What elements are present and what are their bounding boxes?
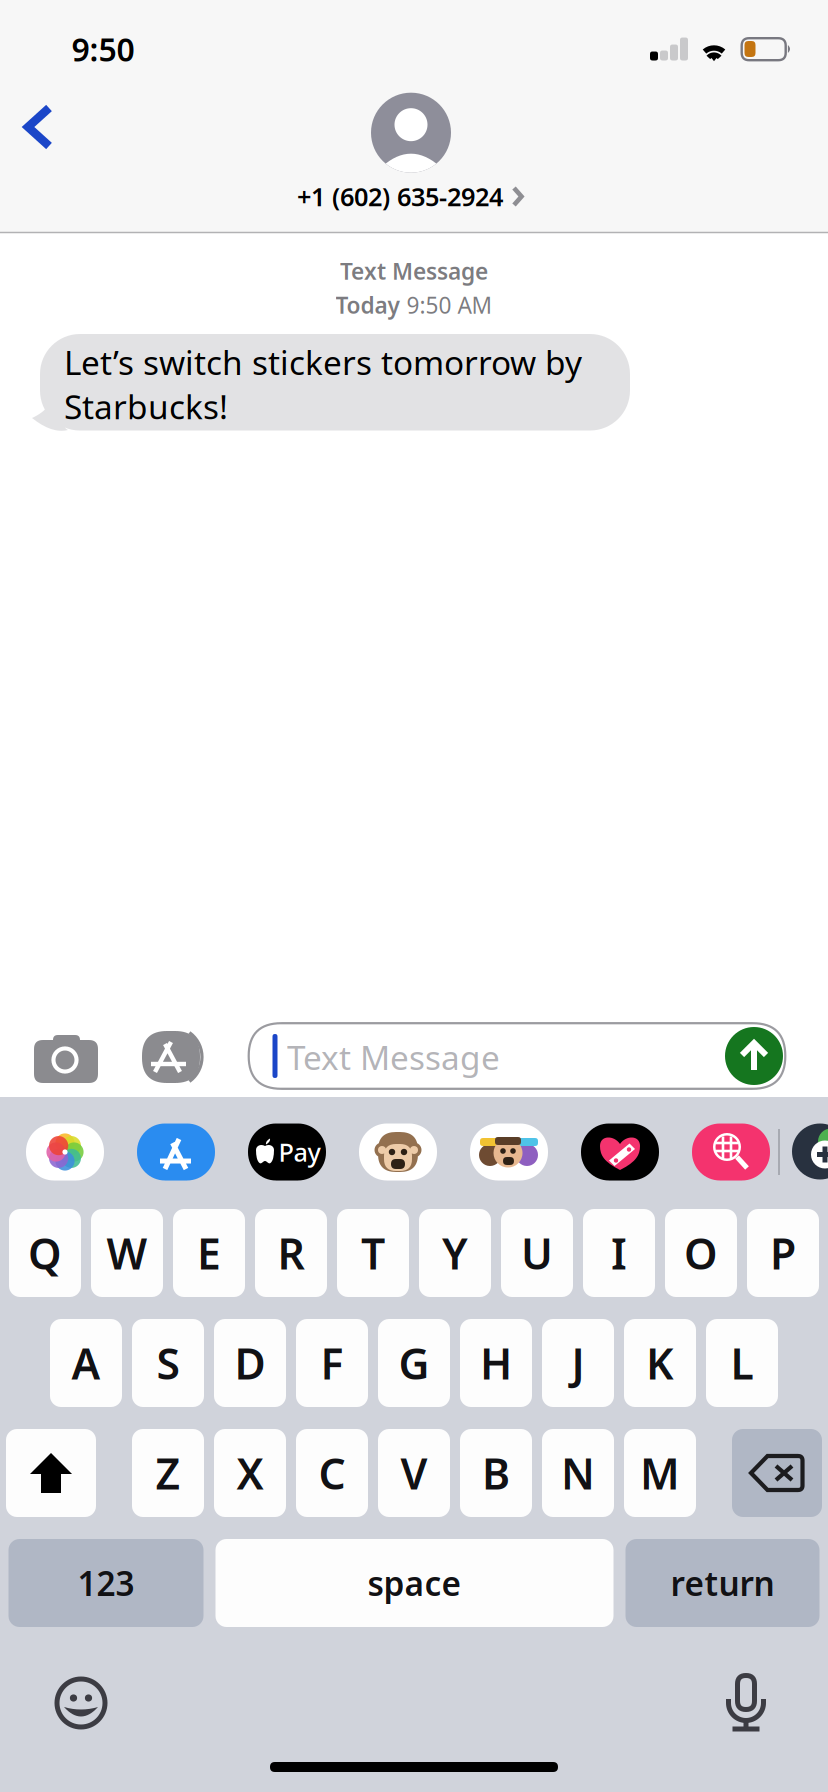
staticText: V [400,1445,427,1501]
button[interactable]: Apps [141,1022,213,1092]
button[interactable]: Emoji keyboard [45,1667,117,1739]
staticText: S [156,1335,179,1391]
staticText: X [236,1445,263,1501]
staticText: O [684,1225,718,1281]
button[interactable]: T [337,1209,409,1297]
button[interactable]: Shift [6,1429,96,1517]
staticText: 123 [77,1561,134,1605]
button[interactable]: F [296,1319,368,1407]
button[interactable]: Q [9,1209,81,1297]
staticText: H [480,1335,512,1391]
button[interactable]: Z [132,1429,204,1517]
button[interactable]: J [542,1319,614,1407]
button[interactable]: D [214,1319,286,1407]
staticText: L [730,1335,753,1391]
staticText: +1 (602) 635-2924 [297,180,503,213]
button[interactable]: App Store [137,1123,215,1180]
button[interactable]: space [215,1539,613,1627]
staticText: 9:50 [71,28,134,70]
button[interactable]: Delete [732,1429,822,1517]
staticText: G [398,1335,429,1391]
button[interactable]: Monkey sticker [359,1123,437,1180]
button[interactable]: H [460,1319,532,1407]
button[interactable]: Fitness [581,1123,659,1180]
button[interactable]: A [50,1319,122,1407]
staticText: A [71,1335,100,1391]
button[interactable]: I [583,1209,655,1297]
button[interactable]: Camera [26,1024,106,1094]
staticText: Today [335,290,399,320]
staticText: Let’s switch stickers tomorrow by Starbu… [64,340,582,428]
staticText: Text Message [287,1035,500,1079]
button[interactable]: P [747,1209,819,1297]
staticText: R [277,1225,304,1281]
button[interactable]: return [625,1539,819,1627]
staticText: Y [442,1225,468,1281]
button[interactable]: L [706,1319,778,1407]
staticText: T [361,1225,385,1281]
staticText: W [106,1225,147,1281]
staticText: return [670,1561,774,1605]
button[interactable]: 123 [8,1539,203,1627]
button[interactable]: W [91,1209,163,1297]
staticText: M [640,1445,680,1501]
staticText: D [234,1335,265,1391]
staticText: C [318,1445,345,1501]
button[interactable]: Memoji [470,1123,548,1180]
button[interactable]: X [214,1429,286,1517]
button[interactable]: U [501,1209,573,1297]
staticText: I [611,1225,627,1281]
button[interactable]: Send [725,1027,783,1085]
button[interactable]: V [378,1429,450,1517]
button[interactable]: C [296,1429,368,1517]
staticText: K [646,1335,674,1391]
staticText: B [482,1445,510,1501]
button[interactable]: G [378,1319,450,1407]
button[interactable]: Dictate [710,1667,782,1739]
staticText: F [320,1335,343,1391]
staticText: 9:50 AM [406,290,492,320]
staticText: U [521,1225,553,1281]
button[interactable]: S [132,1319,204,1407]
button[interactable]: Y [419,1209,491,1297]
button[interactable]: R [255,1209,327,1297]
staticText: Pay [278,1135,320,1169]
button[interactable]: K [624,1319,696,1407]
staticText: E [197,1225,221,1281]
staticText: Text Message [340,256,488,286]
button[interactable]: Back [0,87,78,167]
button[interactable]: O [665,1209,737,1297]
button[interactable]: Image search [692,1123,770,1180]
button[interactable]: N [542,1429,614,1517]
button[interactable]: E [173,1209,245,1297]
button[interactable]: Photos [26,1123,104,1180]
staticText: Z [155,1445,180,1501]
staticText: P [770,1225,796,1281]
staticText: J [571,1335,584,1391]
button[interactable]: B [460,1429,532,1517]
staticText: N [561,1445,595,1501]
button[interactable]: Apple Pay [248,1123,326,1180]
button[interactable]: M [624,1429,696,1517]
staticText: space [367,1561,461,1605]
button[interactable]: +1 (602) 635-2924 [297,93,525,213]
staticText: Q [28,1225,62,1281]
